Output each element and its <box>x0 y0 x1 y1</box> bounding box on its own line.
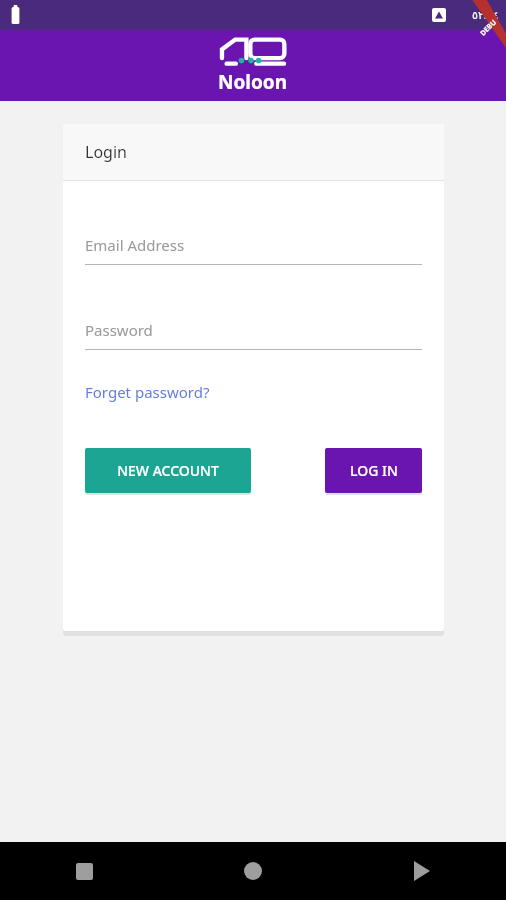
button[interactable]: Forget password? <box>85 380 210 404</box>
staticText: Email Address <box>85 235 185 255</box>
staticText: LOG IN <box>350 461 398 480</box>
staticText: Login <box>85 141 127 163</box>
staticText: ٥٢:٥٤ <box>472 7 499 22</box>
button[interactable]: LOG IN <box>325 448 422 493</box>
button[interactable]: Password <box>85 320 422 350</box>
button[interactable]: NEW ACCOUNT <box>85 448 251 493</box>
staticText: Noloon <box>218 69 288 95</box>
button[interactable]: Recent apps <box>0 842 168 900</box>
staticText: DEBU <box>478 18 499 38</box>
staticText: Password <box>85 320 153 340</box>
button[interactable]: Email Address <box>85 235 422 265</box>
button[interactable]: Back <box>337 842 506 900</box>
staticText: NEW ACCOUNT <box>117 461 219 480</box>
button[interactable]: Home <box>168 842 337 900</box>
staticText: Forget password? <box>85 382 210 402</box>
